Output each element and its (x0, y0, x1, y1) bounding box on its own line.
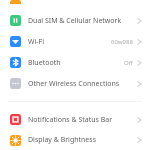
staticText: Dual SIM & Cellular Network (28, 16, 137, 26)
staticText: Wi-Fi (28, 37, 111, 47)
staticText: 60w988 (111, 38, 133, 46)
button[interactable] (0, 0, 150, 4)
staticText: Display & Brightness (28, 135, 137, 145)
button[interactable]: Dual SIM & Cellular Network (0, 10, 150, 31)
button[interactable]: Display & Brightness (0, 130, 150, 150)
staticText: Bluetooth (28, 58, 124, 68)
button[interactable]: Bluetooth (0, 52, 150, 73)
button[interactable]: Other Wireless Connections (0, 73, 150, 94)
staticText: Notifications & Status Bar (28, 115, 137, 125)
button[interactable]: Notifications & Status Bar (0, 109, 150, 130)
button[interactable]: Wi-Fi (0, 31, 150, 52)
staticText: Off (124, 59, 133, 67)
staticText: Other Wireless Connections (28, 79, 137, 89)
